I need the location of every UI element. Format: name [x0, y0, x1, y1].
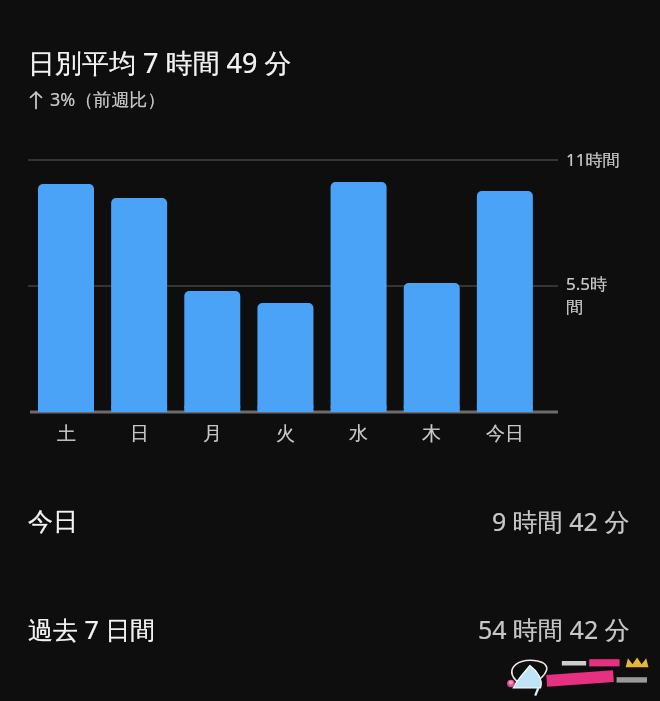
- staticText: 5.5時間: [566, 272, 622, 318]
- staticText: 過去 7 日間: [28, 612, 156, 646]
- button[interactable]: 今日: [0, 497, 660, 545]
- staticText: 今日: [486, 422, 524, 446]
- staticText: 日別平均 7 時間 49 分: [28, 44, 292, 81]
- staticText: 月: [203, 422, 222, 446]
- staticText: 日: [130, 422, 149, 446]
- staticText: 3%（前週比）: [50, 87, 166, 112]
- button[interactable]: 11時間: [0, 140, 660, 450]
- staticText: 火: [276, 422, 295, 446]
- staticText: 54 時間 42 分: [478, 612, 630, 646]
- other: Watermark logo: [498, 652, 650, 697]
- staticText: 11時間: [566, 148, 620, 171]
- staticText: 水: [349, 422, 368, 446]
- staticText: 今日: [28, 506, 78, 537]
- button[interactable]: 過去 7 日間: [0, 605, 660, 653]
- staticText: 9 時間 42 分: [492, 504, 630, 538]
- staticText: 土: [57, 422, 76, 446]
- staticText: 木: [422, 422, 441, 446]
